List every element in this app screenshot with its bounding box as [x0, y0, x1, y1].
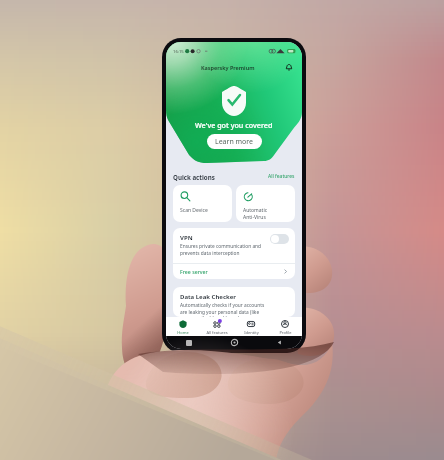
staticText: Identity [244, 330, 259, 335]
staticText: All features [206, 330, 228, 335]
staticText: All features [268, 173, 295, 180]
staticText: We've got you covered [195, 120, 273, 130]
staticText: Free server [180, 268, 208, 275]
button[interactable]: Profile [268, 318, 302, 335]
button[interactable]: Identity [234, 318, 268, 335]
staticText: Quick actions [173, 173, 215, 181]
staticText: Data Leak Checker [180, 293, 236, 301]
staticText: Home [177, 330, 189, 335]
button[interactable]: Home [166, 318, 200, 335]
button[interactable]: Automatic Anti-Virus [236, 185, 295, 222]
button[interactable]: Notifications [283, 61, 295, 73]
button[interactable]: Data Leak Checker [173, 287, 295, 317]
button[interactable]: VPN toggle [270, 234, 289, 244]
button[interactable]: Free server [173, 264, 295, 279]
staticText: 16:15 [173, 49, 184, 55]
staticText: Ensures private communication and preven… [180, 243, 262, 257]
button[interactable]: Scan Device [173, 185, 232, 222]
button[interactable]: All features [200, 318, 234, 335]
staticText: Automatic Anti-Virus [243, 207, 268, 221]
staticText: Learn more [215, 137, 254, 147]
button[interactable]: Learn more [207, 134, 262, 149]
staticText: Automatically checks if your accounts ar… [180, 302, 265, 317]
staticText: Kaspersky Premium [201, 64, 255, 71]
button[interactable]: All features [268, 173, 295, 181]
staticText: VPN [180, 234, 193, 242]
staticText: Scan Device [180, 207, 208, 214]
staticText: Profile [279, 330, 292, 335]
